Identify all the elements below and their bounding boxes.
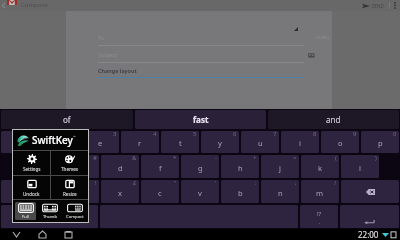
staticText: 22:00: [358, 229, 379, 240]
button[interactable]: More options: [390, 0, 399, 11]
button[interactable]: SEND: [360, 3, 386, 9]
button[interactable]: 2: [41, 131, 79, 153]
staticText: e: [98, 138, 103, 148]
staticText: #: [93, 155, 97, 162]
button[interactable]: ;: [261, 180, 299, 203]
button[interactable]: Attach file: [307, 51, 315, 59]
button[interactable]: Settings: [13, 151, 50, 175]
staticText: Settings: [23, 166, 41, 172]
button[interactable]: Undock: [13, 176, 50, 199]
staticText: 6: [233, 131, 237, 138]
button[interactable]: @: [21, 155, 59, 178]
staticText: ™: [73, 135, 76, 139]
staticText: o: [338, 138, 343, 148]
button[interactable]: of: [1, 110, 133, 129]
staticText: h: [238, 163, 243, 173]
button[interactable]: ': [181, 180, 219, 203]
staticText: 1: [33, 131, 37, 138]
button[interactable]: /: [301, 180, 339, 203]
staticText: of: [63, 114, 71, 125]
button[interactable]: Navigate up: [0, 0, 7, 11]
staticText: ;: [295, 180, 297, 187]
button[interactable]: 5: [161, 131, 199, 153]
staticText: Change layout: [98, 67, 137, 74]
staticText: x: [118, 188, 122, 198]
button[interactable]: [341, 180, 399, 203]
button[interactable]: 1: [1, 131, 39, 153]
staticText: ": [174, 180, 177, 187]
staticText: f: [159, 163, 162, 173]
button[interactable]: Themes: [51, 151, 88, 175]
staticText: b: [238, 188, 243, 198]
button[interactable]: (: [301, 155, 339, 178]
staticText: .: [319, 218, 321, 226]
button[interactable]: !: [61, 180, 99, 203]
staticText: w: [57, 138, 63, 148]
button[interactable]: 3: [81, 131, 119, 153]
staticText: 5: [193, 131, 197, 138]
button[interactable]: Resize: [51, 176, 88, 199]
staticText: p: [378, 138, 383, 148]
button[interactable]: 8: [281, 131, 319, 153]
button[interactable]: and: [268, 110, 399, 129]
staticText: =: [293, 155, 297, 162]
button[interactable]: Recent apps: [62, 229, 74, 240]
button[interactable]: £: [101, 180, 139, 203]
staticText: Resize: [63, 191, 77, 197]
button[interactable]: fast: [135, 110, 266, 129]
staticText: 9: [353, 131, 357, 138]
button[interactable]: Thumb: [40, 202, 60, 220]
button[interactable]: [1, 180, 59, 203]
staticText: +: [253, 155, 257, 162]
staticText: k: [318, 163, 323, 173]
staticText: &: [132, 155, 137, 162]
staticText: d: [118, 163, 123, 173]
button[interactable]: +: [221, 155, 259, 178]
staticText: 3: [113, 131, 117, 138]
button[interactable]: 4: [121, 131, 159, 153]
button[interactable]: *: [141, 155, 179, 178]
button[interactable]: 9: [321, 131, 359, 153]
staticText: £: [133, 180, 137, 187]
staticText: l: [359, 163, 361, 173]
button[interactable]: +CC/BCC: [315, 35, 330, 40]
button[interactable]: Hide keyboard: [10, 229, 22, 240]
staticText: 4: [153, 131, 157, 138]
button[interactable]: -: [181, 155, 219, 178]
staticText: Themes: [61, 166, 79, 172]
button[interactable]: !?: [300, 205, 338, 228]
staticText: -: [215, 155, 217, 162]
button[interactable]: :: [221, 180, 259, 203]
button[interactable]: [340, 205, 399, 228]
staticText: (: [335, 155, 337, 162]
button[interactable]: ?123: [1, 205, 98, 228]
button[interactable]: Compact: [64, 202, 86, 220]
staticText: u: [258, 138, 263, 148]
button[interactable]: SwiftKey: [13, 130, 88, 150]
button[interactable]: Full: [15, 202, 36, 220]
button[interactable]: &: [101, 155, 139, 178]
button[interactable]: ": [141, 180, 179, 203]
button[interactable]: Home: [36, 229, 48, 240]
staticText: m: [316, 188, 324, 198]
button[interactable]: 6: [201, 131, 239, 153]
staticText: +CC/BCC: [315, 35, 330, 40]
button[interactable]: 7: [241, 131, 279, 153]
button[interactable]: 0: [361, 131, 399, 153]
staticText: v: [198, 188, 202, 198]
button[interactable]: #: [61, 155, 99, 178]
staticText: Undock: [23, 191, 40, 197]
staticText: q: [18, 138, 23, 148]
staticText: !?: [317, 210, 322, 218]
staticText: :: [255, 180, 257, 187]
button[interactable]: =: [261, 155, 299, 178]
staticText: j: [279, 163, 281, 173]
staticText: /: [334, 180, 337, 187]
staticText: 2: [73, 131, 77, 138]
button[interactable]: ): [341, 155, 379, 178]
staticText: r: [138, 138, 142, 148]
